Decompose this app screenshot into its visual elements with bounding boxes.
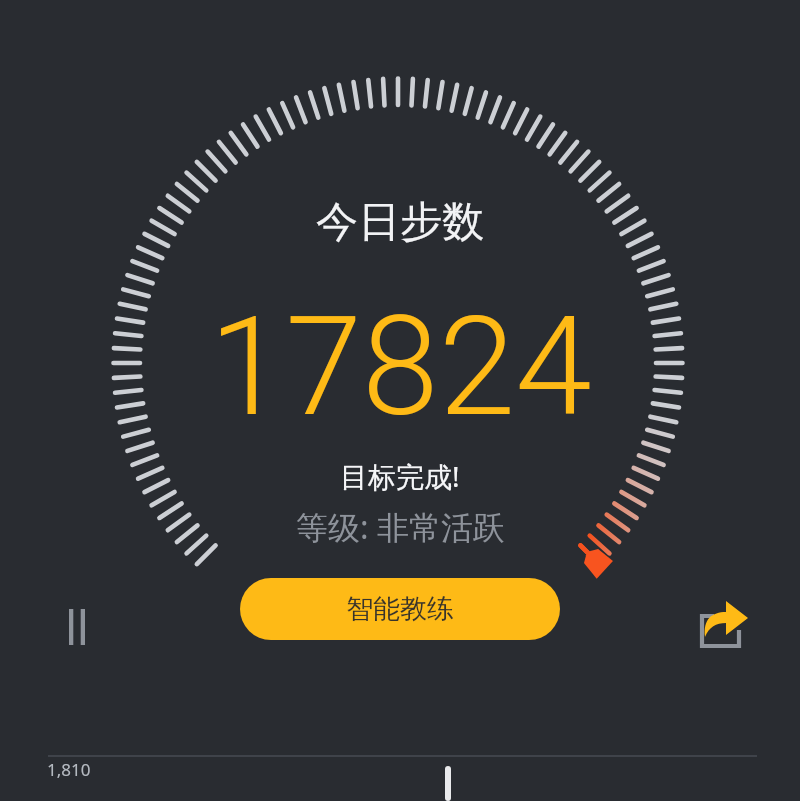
staticText: 智能教练 [346, 592, 454, 626]
staticText: 等级: 非常活跃 [296, 505, 505, 549]
staticText: 目标完成! [340, 457, 460, 495]
staticText: 1,810 [47, 758, 91, 781]
button[interactable]: Share [692, 592, 752, 652]
staticText: 今日步数 [316, 196, 484, 249]
staticText: 17824 [209, 286, 592, 448]
button[interactable]: 智能教练 [240, 578, 560, 640]
button[interactable]: Pause [53, 602, 101, 650]
